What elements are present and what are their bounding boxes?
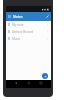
button[interactable]: Back: [13, 80, 19, 86]
button[interactable]: Recent apps: [38, 80, 44, 86]
staticText: Notes: [13, 14, 23, 19]
staticText: Archive Record: [12, 30, 33, 34]
button[interactable]: My note: [6, 21, 51, 28]
button[interactable]: Archive Record: [6, 28, 51, 35]
staticText: My note: [12, 23, 24, 27]
button[interactable]: Home: [26, 80, 32, 86]
button[interactable]: Music: [6, 35, 51, 42]
button[interactable]: Add recording: [42, 73, 48, 79]
button[interactable]: Navigation menu: [6, 12, 13, 21]
staticText: Music: [12, 37, 21, 41]
button[interactable]: Edit: [43, 12, 51, 21]
